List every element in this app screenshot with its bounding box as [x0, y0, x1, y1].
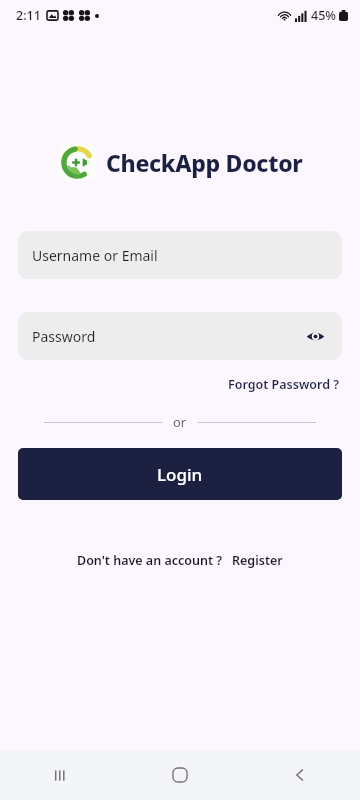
- staticText: Don't have an account ?: [77, 552, 223, 569]
- staticText: Login: [157, 463, 203, 486]
- button[interactable]: Forgot Password ?: [226, 374, 342, 395]
- staticText: 2:11: [16, 7, 41, 24]
- button[interactable]: Username or Email: [18, 231, 342, 279]
- staticText: Forgot Password ?: [228, 376, 340, 393]
- staticText: CheckApp Doctor: [106, 147, 303, 178]
- staticText: Register: [232, 552, 283, 569]
- button[interactable]: Register: [223, 552, 283, 569]
- button[interactable]: Show password: [302, 323, 328, 349]
- button[interactable]: Password: [18, 312, 342, 360]
- button[interactable]: Back: [276, 751, 324, 799]
- staticText: Username or Email: [32, 246, 158, 265]
- button[interactable]: Home: [156, 751, 204, 799]
- staticText: or: [173, 413, 187, 431]
- button[interactable]: Login: [18, 448, 342, 500]
- button[interactable]: Recent apps: [36, 751, 84, 799]
- staticText: Password: [32, 327, 96, 346]
- staticText: 45%: [311, 7, 336, 24]
